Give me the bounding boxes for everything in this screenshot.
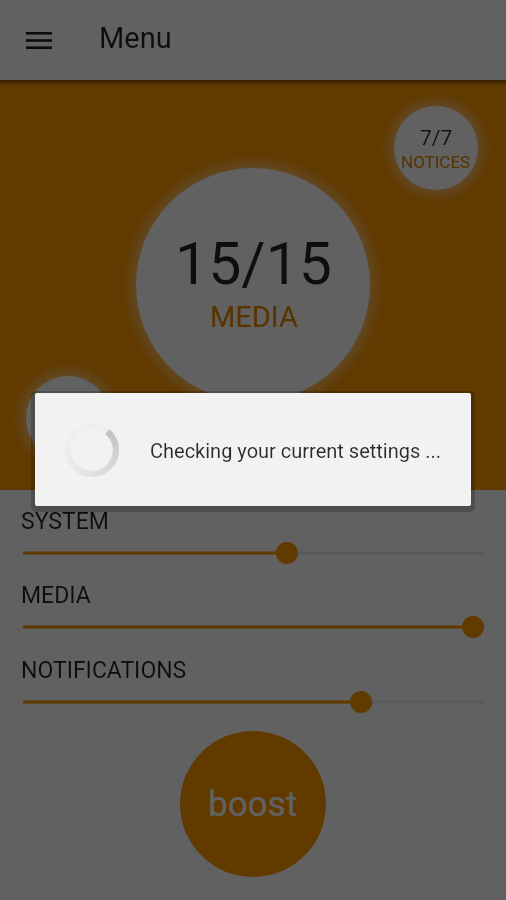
staticText: SYSTEM [21, 508, 109, 535]
staticText: MEDIA [210, 300, 298, 334]
staticText: 15/15 [175, 229, 332, 298]
staticText: MEDIA [21, 582, 91, 609]
button[interactable] [23, 689, 484, 715]
staticText: NOTIFICATIONS [21, 657, 187, 684]
button[interactable]: boost [180, 731, 326, 877]
staticText: boost [208, 784, 298, 825]
button[interactable]: Open navigation menu [13, 14, 65, 66]
button[interactable] [23, 614, 484, 640]
staticText: 7/7 [420, 126, 453, 151]
button[interactable] [23, 540, 484, 566]
staticText: NOTICES [401, 152, 471, 172]
staticText: Checking your current settings ... [150, 439, 442, 462]
staticText: Menu [99, 21, 172, 55]
